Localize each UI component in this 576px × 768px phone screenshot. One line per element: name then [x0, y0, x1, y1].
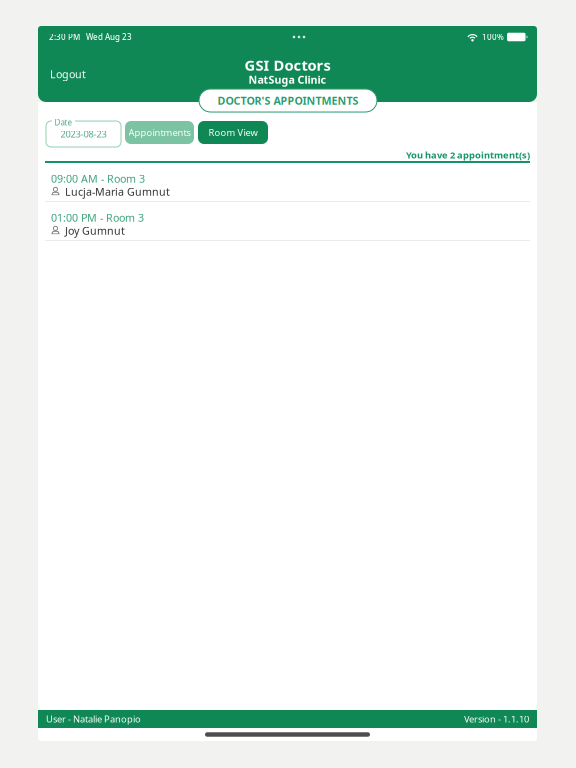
button[interactable]: 09:00 AM - Room 3	[45, 163, 530, 202]
button[interactable]: Logout	[38, 59, 100, 89]
staticText: Logout	[50, 67, 86, 81]
staticText: DOCTOR'S APPOINTMENTS	[217, 93, 358, 108]
staticText: 01:00 PM - Room 3	[51, 210, 144, 225]
staticText: 09:00 AM - Room 3	[51, 171, 145, 186]
staticText: User - Natalie Panopio	[46, 713, 141, 725]
staticText: Version - 1.1.10	[464, 713, 529, 725]
staticText: 2023-08-23	[60, 128, 106, 140]
staticText: Joy Gumnut	[65, 223, 125, 238]
staticText: Lucja-Maria Gumnut	[65, 184, 170, 199]
staticText: GSI Doctors	[244, 55, 330, 75]
button[interactable]: Appointments	[125, 121, 194, 144]
staticText: Room View	[208, 126, 257, 139]
staticText: You have 2 appointment(s)	[406, 149, 530, 161]
button[interactable]: DOCTOR'S APPOINTMENTS	[199, 89, 377, 112]
staticText: Date	[54, 117, 72, 128]
staticText: 2:30 PM	[49, 32, 80, 42]
button[interactable]: Room View	[198, 121, 268, 144]
button[interactable]: 2023-08-23	[46, 117, 121, 147]
staticText: 100%	[482, 32, 504, 42]
staticText: NatSuga Clinic	[248, 72, 326, 87]
staticText: Appointments	[128, 126, 190, 139]
button[interactable]: 01:00 PM - Room 3	[45, 202, 530, 241]
staticText: Wed Aug 23	[86, 32, 132, 42]
